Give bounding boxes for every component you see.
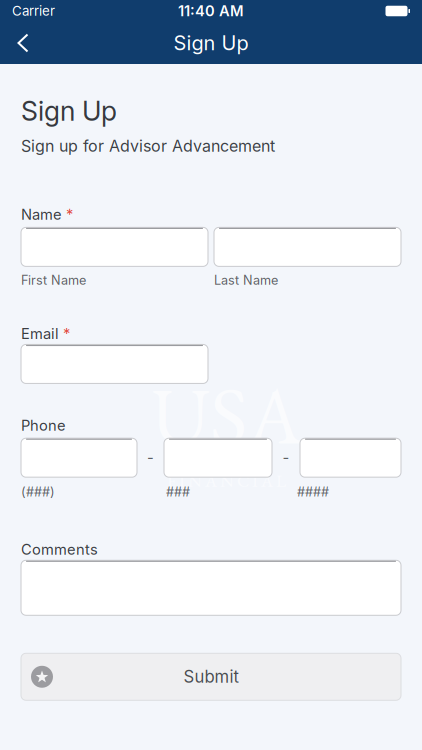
staticText: Submit — [183, 667, 238, 687]
staticText: Phone — [21, 416, 66, 434]
staticText: * — [63, 325, 70, 342]
button[interactable]: Back — [0, 22, 46, 64]
staticText: - — [147, 449, 154, 466]
staticText: #### — [297, 484, 329, 499]
staticText: - — [282, 449, 289, 466]
staticText: ### — [166, 484, 190, 499]
staticText: Comments — [21, 540, 98, 558]
button[interactable]: Submit — [21, 653, 401, 700]
staticText: Sign up for Advisor Advancement — [21, 136, 275, 156]
staticText: F I N A N C I A L — [167, 469, 286, 492]
staticText: * — [66, 206, 73, 223]
staticText: Last Name — [214, 272, 278, 288]
staticText: First Name — [21, 272, 86, 288]
staticText: Email — [21, 325, 59, 342]
staticText: Name — [21, 206, 62, 223]
staticText: Carrier — [12, 3, 55, 19]
staticText: 11:40 AM — [178, 2, 244, 20]
staticText: Sign Up — [173, 31, 248, 55]
staticText: USA — [151, 363, 302, 467]
staticText: (###) — [21, 484, 55, 499]
staticText: Sign Up — [21, 95, 117, 127]
